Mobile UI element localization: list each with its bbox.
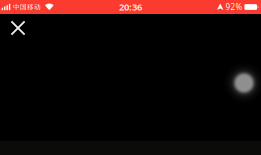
staticText: 中国移动 bbox=[13, 3, 41, 11]
button[interactable]: Close bbox=[0, 14, 36, 42]
staticText: 92% bbox=[225, 2, 242, 12]
staticText: 20:36 bbox=[119, 1, 142, 13]
